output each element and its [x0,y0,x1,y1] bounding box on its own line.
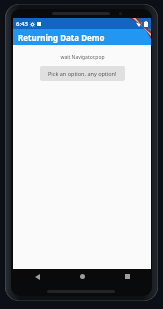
staticText: Pick an option, any option! [48,70,117,77]
button[interactable]: Pick an option, any option! [40,66,125,81]
button[interactable]: Recent apps [119,269,135,284]
button[interactable]: Home [74,269,90,284]
staticText: Returning Data Demo [18,32,105,43]
button[interactable]: Back [29,269,45,284]
staticText: 6:43 [16,20,28,28]
staticText: wait Navigator.pop [60,54,105,61]
